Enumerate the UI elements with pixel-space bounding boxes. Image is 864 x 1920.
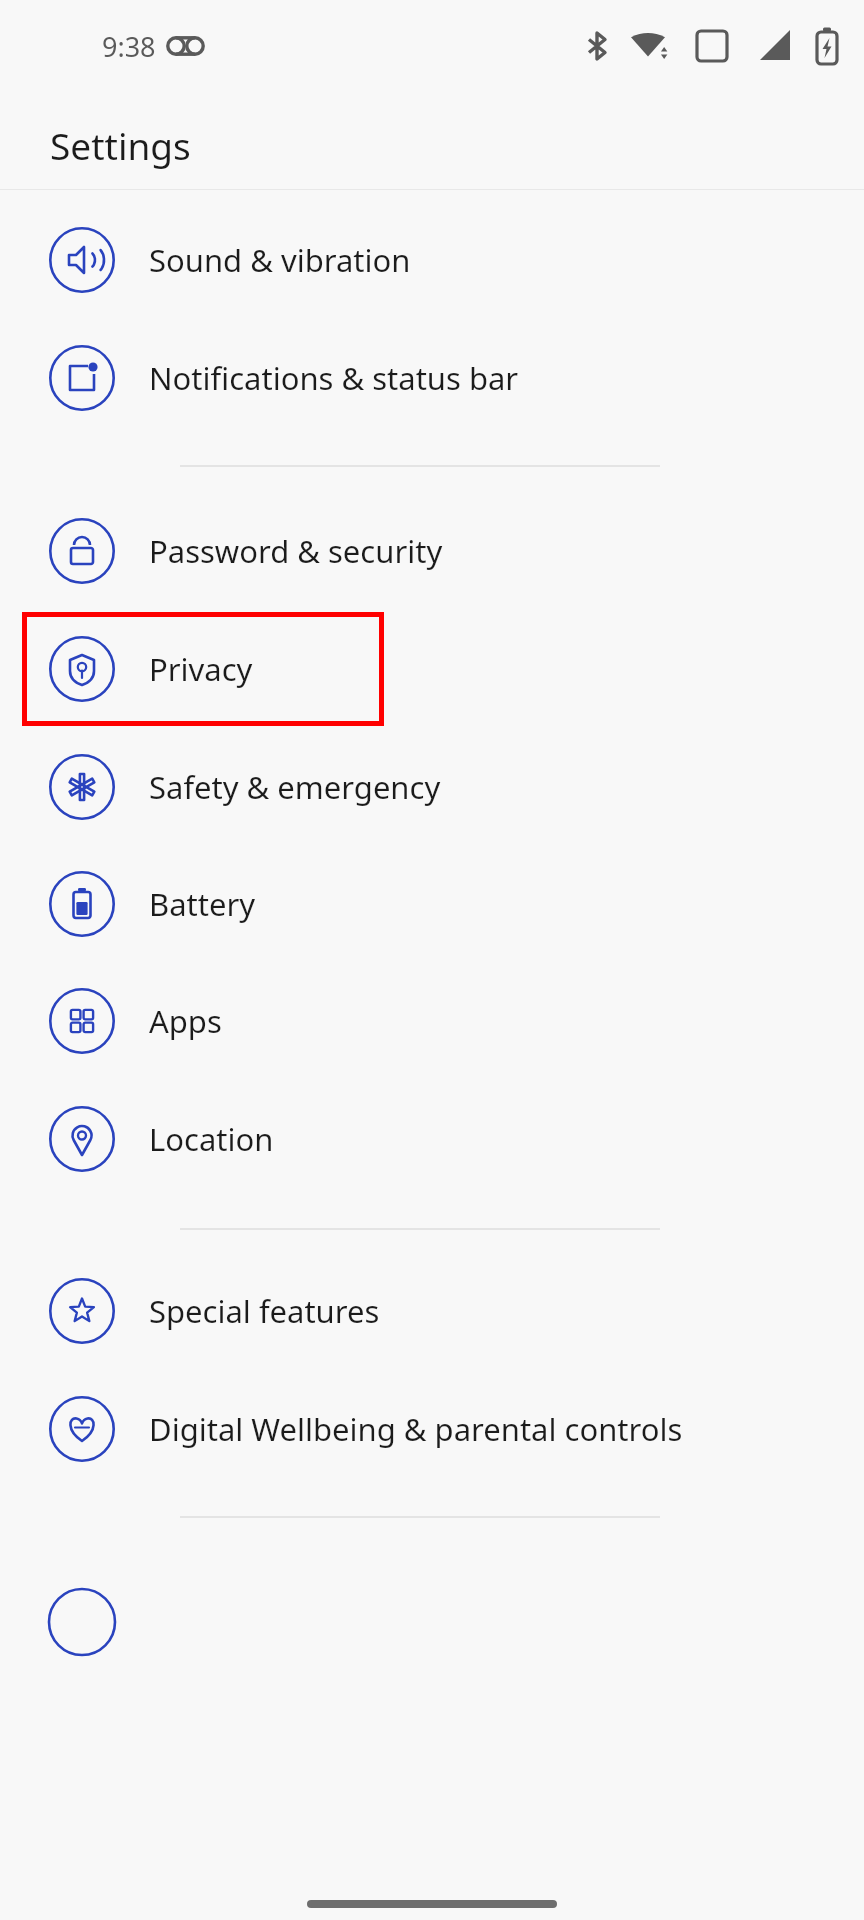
staticText: Sound & vibration [149, 239, 411, 281]
staticText: Battery [149, 883, 256, 925]
button[interactable]: Location [0, 1083, 864, 1195]
button[interactable]: Battery [0, 848, 864, 960]
staticText: Special features [149, 1290, 380, 1332]
button[interactable]: Privacy [0, 613, 864, 725]
staticText: Notifications & status bar [149, 357, 519, 399]
staticText: Settings [50, 120, 191, 170]
button[interactable]: Apps [0, 965, 864, 1077]
staticText: 9:38 [102, 28, 156, 65]
staticText: Location [149, 1118, 274, 1160]
staticText: Password & security [149, 530, 443, 572]
button[interactable]: Digital Wellbeing & parental controls [0, 1373, 864, 1485]
staticText: Safety & emergency [149, 766, 441, 808]
staticText: Digital Wellbeing & parental controls [149, 1408, 683, 1450]
button[interactable]: Sound & vibration [0, 204, 864, 316]
button[interactable]: Special features [0, 1255, 864, 1367]
staticText: Apps [149, 1000, 222, 1042]
staticText: Privacy [149, 648, 253, 690]
button[interactable]: Notifications & status bar [0, 322, 864, 434]
button[interactable]: Safety & emergency [0, 731, 864, 843]
button[interactable]: Password & security [0, 495, 864, 607]
